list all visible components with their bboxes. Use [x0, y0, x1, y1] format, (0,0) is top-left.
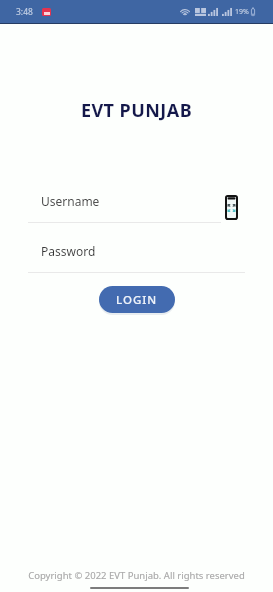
staticText: 19% — [235, 7, 249, 17]
staticText: EVT PUNJAB — [0, 98, 273, 123]
staticText: LOGIN — [116, 292, 158, 308]
button[interactable]: Username — [28, 190, 221, 223]
staticText: Password — [41, 243, 96, 259]
staticText: Username — [41, 193, 100, 209]
staticText: Copyright © 2022 EVT Punjab. All rights … — [0, 569, 273, 582]
button[interactable]: Get device id — [225, 195, 238, 220]
button[interactable]: LOGIN — [99, 286, 175, 313]
button[interactable]: Password — [28, 240, 245, 273]
staticText: 3:48 — [16, 6, 33, 18]
